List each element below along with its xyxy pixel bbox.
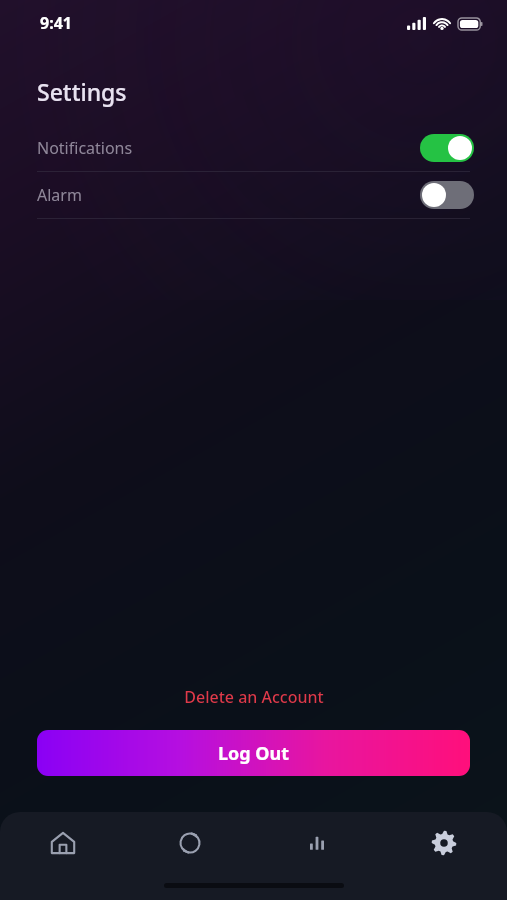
button[interactable]: Log Out bbox=[37, 730, 470, 776]
staticText: 9:41 bbox=[40, 12, 72, 34]
button[interactable]: Alarm bbox=[0, 172, 507, 218]
staticText: Log Out bbox=[218, 741, 290, 766]
button[interactable]: Home bbox=[0, 812, 126, 874]
button[interactable]: Off bbox=[420, 181, 474, 209]
staticText: Delete an Account bbox=[184, 686, 324, 708]
staticText: Notifications bbox=[37, 137, 133, 159]
button[interactable]: Delete an Account bbox=[0, 686, 507, 708]
button[interactable]: Statistics bbox=[253, 812, 380, 874]
button[interactable]: Settings bbox=[380, 812, 507, 874]
button[interactable]: Notifications bbox=[0, 125, 507, 171]
staticText: Alarm bbox=[37, 184, 82, 206]
staticText: Settings bbox=[37, 76, 127, 107]
button[interactable]: On bbox=[420, 134, 474, 162]
button[interactable]: Refresh bbox=[126, 812, 253, 874]
